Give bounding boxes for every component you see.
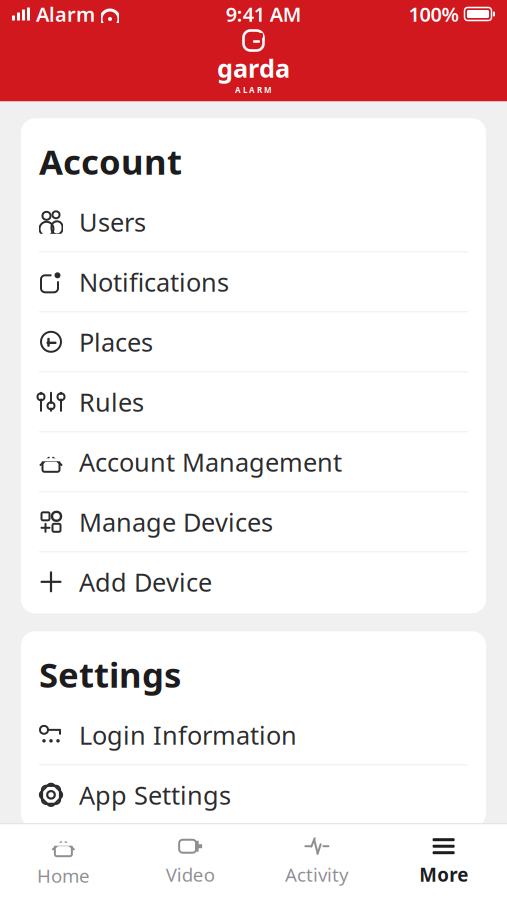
staticText: Login Information [79,718,297,752]
button[interactable]: Activity [253,825,380,899]
staticText: Manage Devices [79,505,273,539]
button[interactable]: Account Management [21,432,486,491]
staticText: Account Management [79,445,342,479]
button[interactable]: Users [21,192,486,251]
staticText: Notifications [79,265,229,299]
button[interactable]: Login Information [21,705,486,764]
button[interactable]: Add Device [21,552,486,611]
staticText: Rules [79,385,144,419]
staticText: 100% [408,1,459,27]
staticText: App Settings [79,778,231,812]
staticText: Places [79,325,153,359]
button[interactable]: App Settings [21,765,486,824]
button[interactable]: Home [0,824,127,900]
button[interactable]: Places [21,312,486,371]
button[interactable]: Notifications [21,252,486,311]
staticText: More [419,862,468,887]
staticText: Alarm [36,1,95,27]
button[interactable]: Manage Devices [21,492,486,551]
button[interactable]: Rules [21,372,486,431]
button[interactable]: More [380,825,507,899]
staticText: About [39,865,145,900]
staticText: Home [37,863,90,888]
staticText: 9:41 AM [226,1,302,27]
staticText: garda [217,51,290,85]
staticText: A L A R M [235,85,272,95]
staticText: Account [39,138,182,184]
button[interactable]: Video [127,825,254,899]
staticText: Activity [285,862,349,887]
staticText: Users [79,205,146,239]
staticText: Settings [39,651,181,697]
staticText: Video [166,862,215,887]
staticText: Add Device [79,565,212,599]
